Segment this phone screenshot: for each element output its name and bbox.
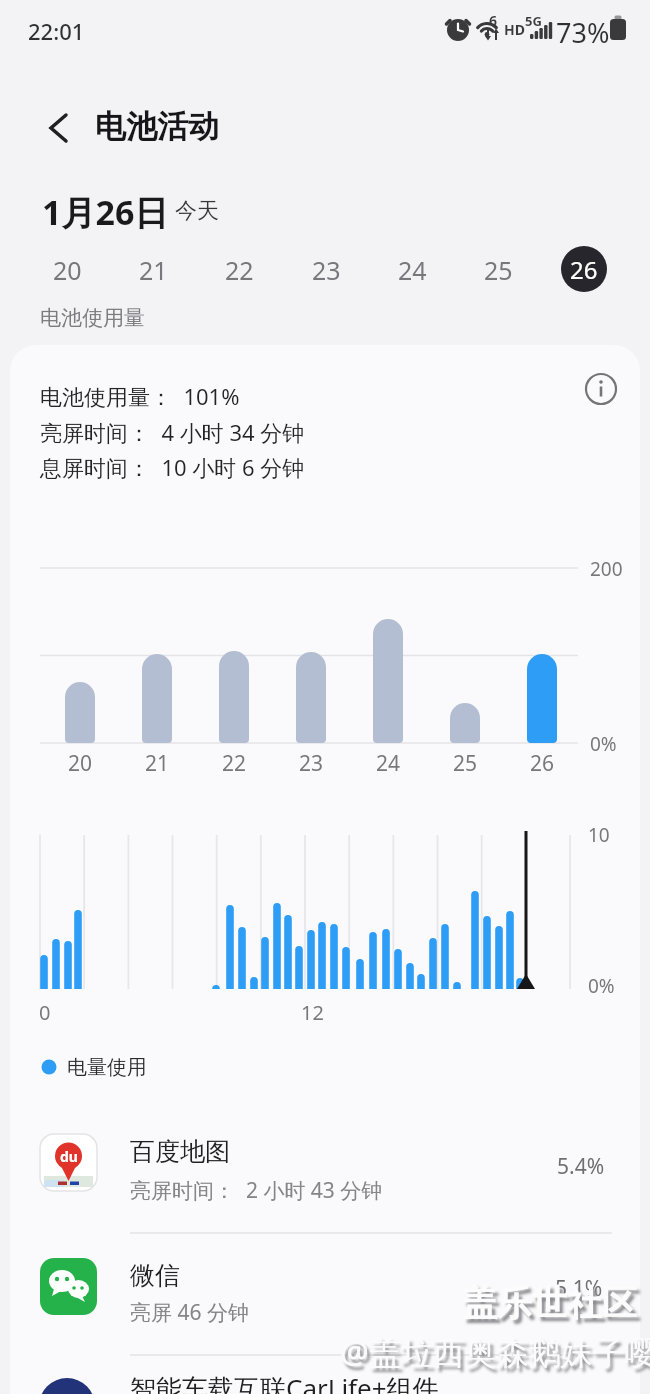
staticText: 25	[484, 253, 513, 287]
staticText: 22:01	[28, 16, 85, 46]
staticText: 亮屏时间： 4 小时 34 分钟	[40, 417, 305, 447]
staticText: 0	[39, 999, 51, 1026]
button[interactable]	[20, 1118, 630, 1214]
staticText: 200	[590, 556, 623, 582]
staticText: 息屏时间： 10 小时 6 分钟	[40, 452, 305, 482]
staticText: 百度地图	[130, 1136, 230, 1167]
staticText: 26	[570, 253, 598, 286]
staticText: 0%	[590, 731, 617, 757]
button[interactable]: 25	[470, 247, 526, 293]
staticText: 12	[301, 999, 324, 1026]
staticText: 20	[53, 253, 82, 287]
staticText: 5G	[525, 12, 542, 30]
staticText: 10	[588, 822, 610, 848]
staticText: 22	[222, 749, 247, 778]
button[interactable]: 24	[384, 247, 440, 293]
staticText: @盖垃西奥森鹅妹子嘤	[340, 1330, 650, 1374]
staticText: 0%	[588, 973, 615, 999]
button[interactable]: 26	[561, 246, 607, 292]
staticText: 25	[453, 749, 478, 778]
button[interactable]	[20, 1242, 630, 1338]
staticText: 亮屏时间： 2 小时 43 分钟	[130, 1176, 383, 1205]
staticText: 电池使用量	[40, 305, 145, 331]
staticText: 22	[225, 253, 254, 287]
staticText: 电池使用量： 101%	[40, 381, 240, 411]
staticText: 5.1%	[555, 1274, 603, 1303]
staticText: 5.4%	[557, 1152, 605, 1181]
staticText: 20	[68, 749, 93, 778]
button[interactable]	[20, 1366, 630, 1394]
staticText: du	[60, 1147, 78, 1166]
button[interactable]	[579, 367, 623, 411]
staticText: 盖乐世社区	[462, 1281, 637, 1325]
staticText: HD	[504, 20, 525, 39]
button[interactable]: 21	[125, 247, 181, 293]
staticText: 微信	[130, 1260, 180, 1291]
staticText: 6	[489, 11, 498, 30]
button[interactable]	[30, 100, 86, 156]
staticText: 今天	[175, 197, 219, 225]
staticText: 电池活动	[95, 107, 219, 146]
button[interactable]: 22	[211, 247, 267, 293]
staticText: 亮屏 46 分钟	[130, 1298, 249, 1327]
staticText: 21	[139, 253, 168, 287]
staticText: 21	[145, 749, 170, 778]
staticText: 1月26日	[42, 189, 169, 235]
staticText: 26	[530, 749, 555, 778]
staticText: 智能车载互联CarLife+组件	[130, 1370, 439, 1394]
staticText: 24	[376, 749, 401, 778]
staticText: 23	[299, 749, 324, 778]
staticText: 电量使用	[67, 1055, 147, 1080]
staticText: 23	[312, 253, 341, 287]
staticText: 24	[398, 253, 427, 287]
button[interactable]: 23	[298, 247, 354, 293]
button[interactable]: 20	[39, 247, 95, 293]
staticText: 73%	[556, 14, 610, 51]
